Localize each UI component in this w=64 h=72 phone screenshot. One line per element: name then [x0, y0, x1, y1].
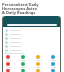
button[interactable]	[20, 55, 26, 61]
button[interactable]	[3, 36, 60, 40]
staticText: Personalized Daily Horoscopes Astro & Da…	[2, 2, 62, 15]
button[interactable]	[50, 55, 56, 61]
button[interactable]	[35, 69, 41, 72]
button[interactable]	[3, 40, 60, 44]
button[interactable]	[20, 62, 26, 68]
button[interactable]	[35, 55, 41, 61]
button[interactable]	[3, 48, 60, 52]
button[interactable]	[5, 55, 11, 61]
button[interactable]	[50, 69, 56, 72]
button[interactable]	[3, 32, 60, 36]
button[interactable]	[5, 62, 11, 68]
button[interactable]	[3, 44, 60, 48]
button[interactable]	[3, 28, 60, 32]
button[interactable]	[5, 69, 11, 72]
button[interactable]	[20, 69, 26, 72]
button[interactable]	[3, 16, 60, 27]
button[interactable]	[35, 62, 41, 68]
button[interactable]	[50, 62, 56, 68]
